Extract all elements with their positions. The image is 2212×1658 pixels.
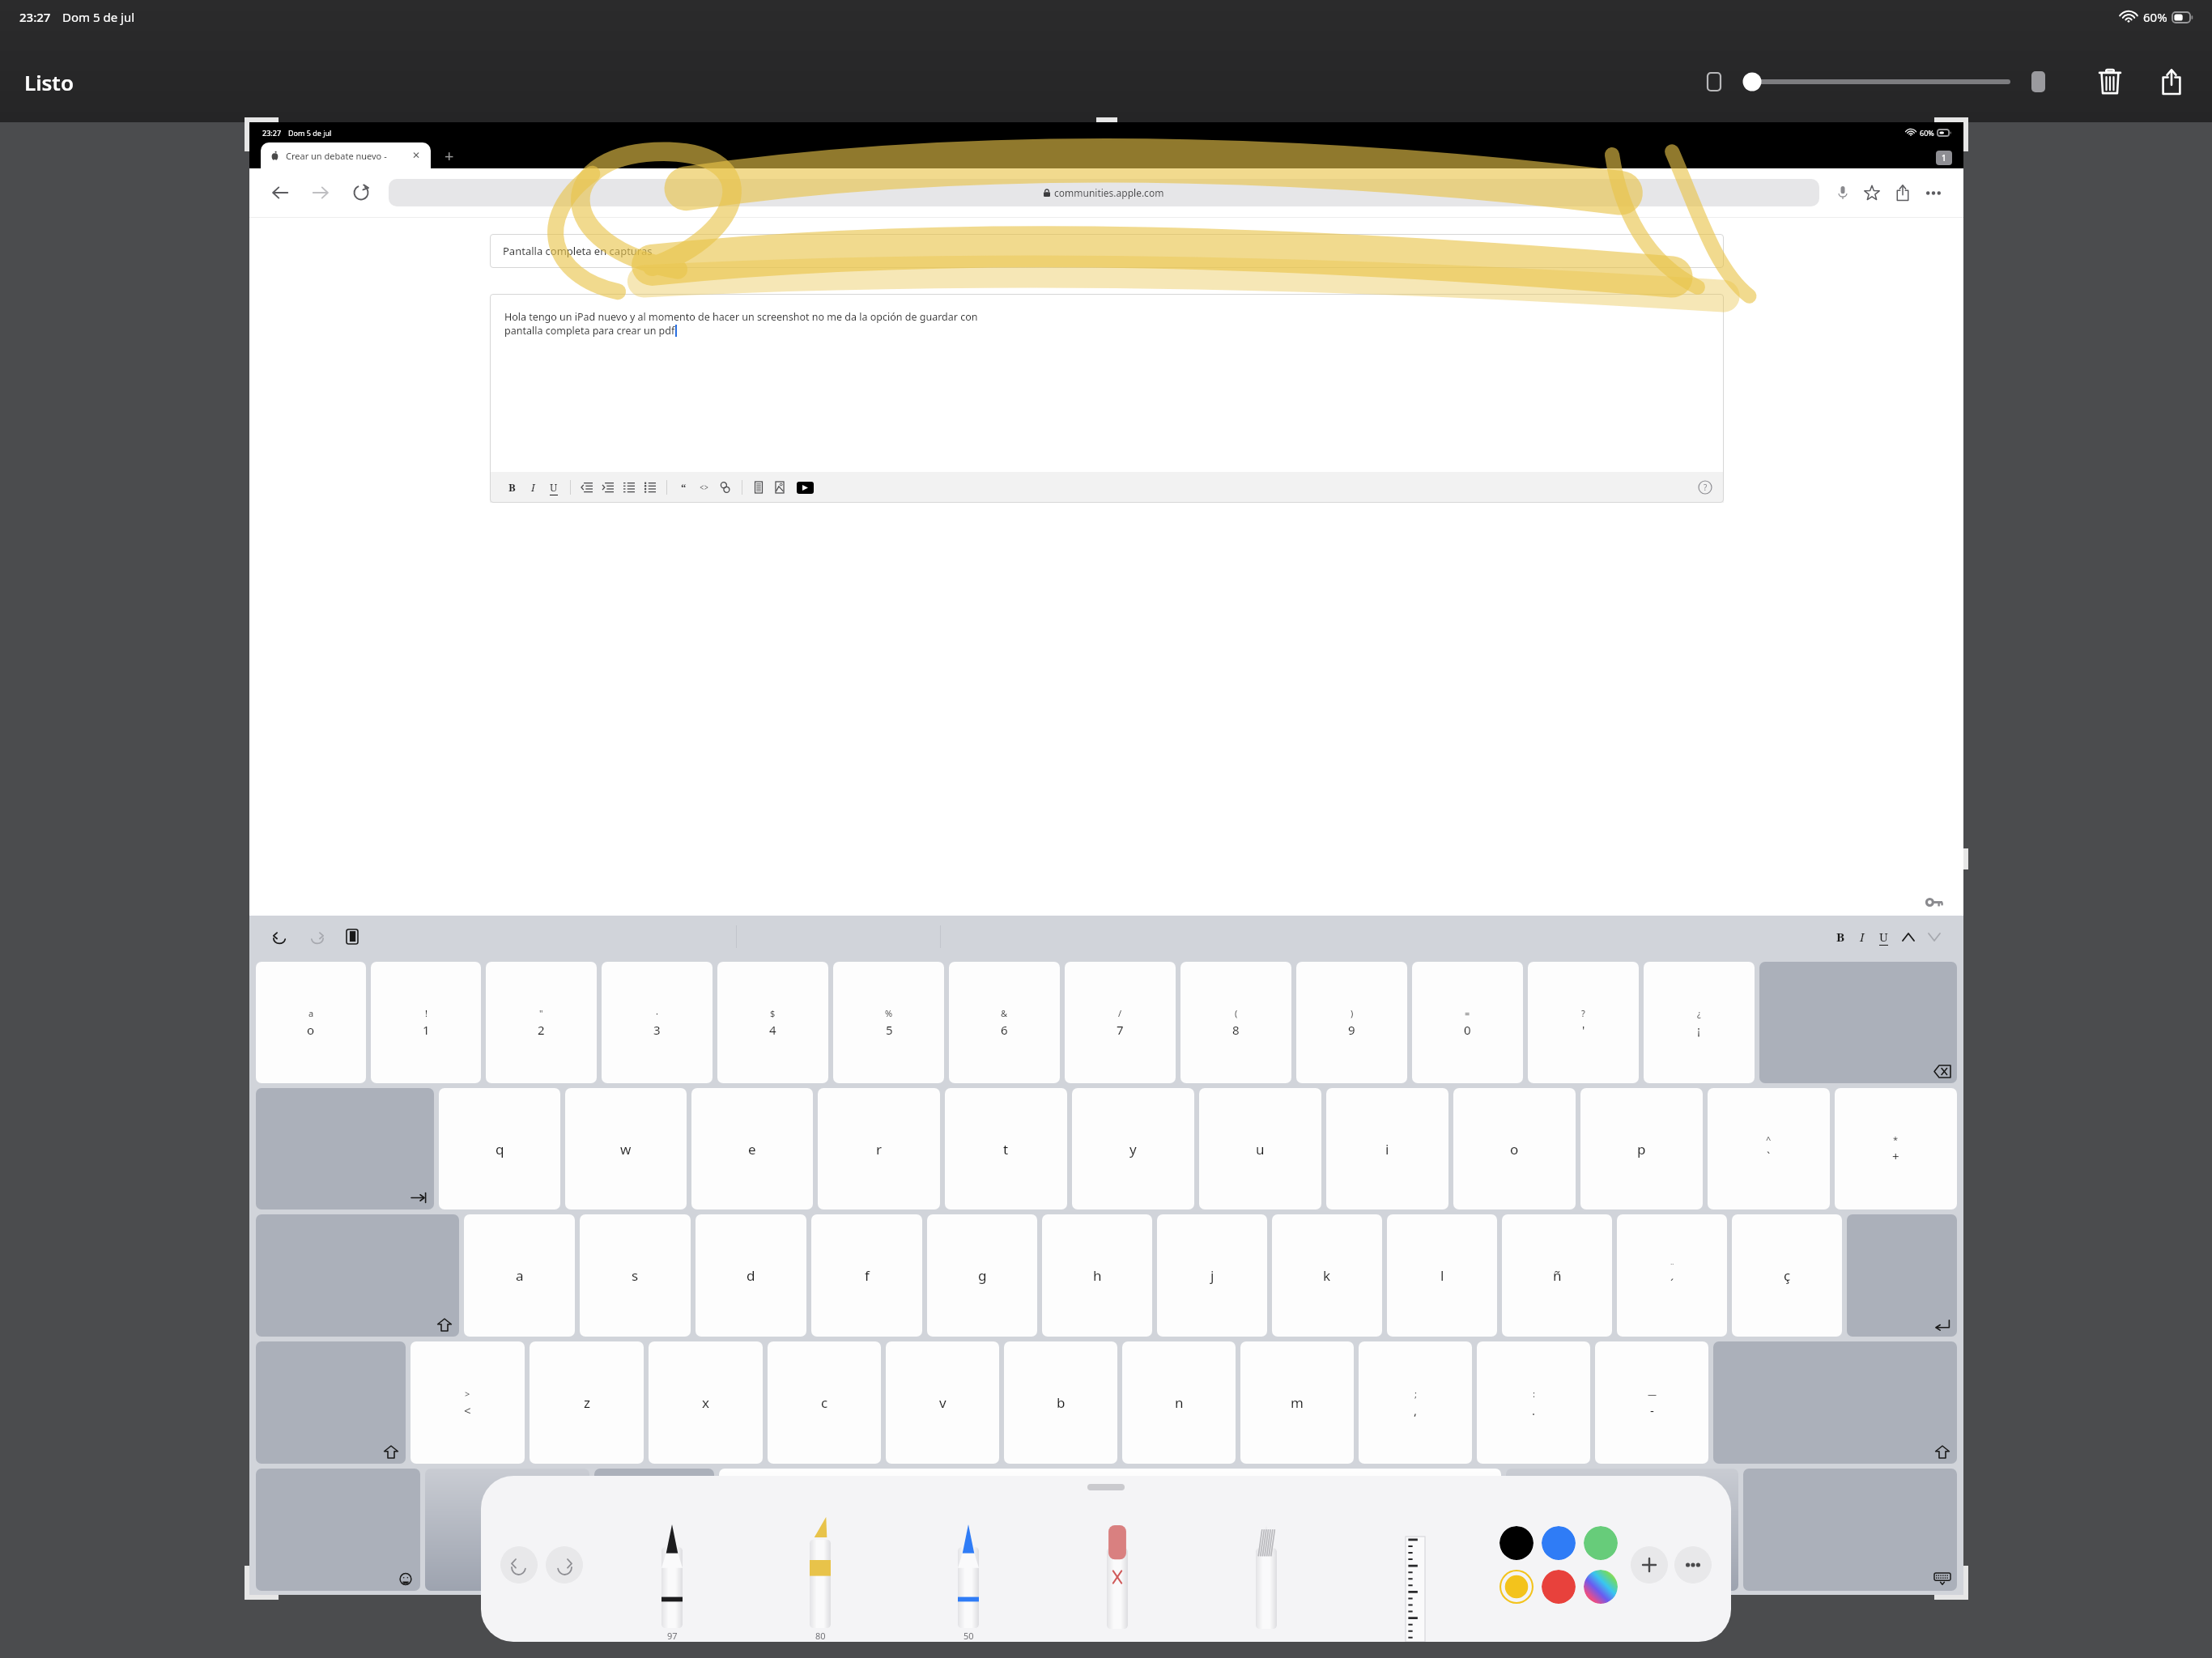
button[interactable]: Formato [598, 476, 619, 499]
button[interactable]: Herramienta [1043, 1487, 1192, 1642]
button[interactable]: Color [1542, 1526, 1576, 1560]
button[interactable]: w [565, 1088, 687, 1209]
button[interactable]: Regla [1341, 1487, 1490, 1642]
button[interactable]: B [1829, 929, 1853, 945]
button[interactable]: Retroceso [1759, 962, 1957, 1083]
button[interactable]: communities.apple.com [389, 179, 1819, 206]
button[interactable]: r [818, 1088, 940, 1209]
button[interactable]: ñ [1502, 1214, 1612, 1337]
button[interactable]: Tabulador [256, 1088, 434, 1209]
button[interactable]: j [1157, 1214, 1267, 1337]
button[interactable]: Deshacer [500, 1546, 538, 1584]
button[interactable]: q [439, 1088, 560, 1209]
button[interactable]: Crear un debate nuevo - [261, 142, 431, 168]
button[interactable]: b [1004, 1341, 1117, 1464]
button[interactable]: — [1595, 1341, 1708, 1464]
button[interactable]: v [886, 1341, 999, 1464]
button[interactable]: a [464, 1214, 575, 1337]
button[interactable]: / [1065, 962, 1176, 1083]
button[interactable]: ^ [1708, 1088, 1830, 1209]
button[interactable]: Formato [715, 476, 736, 499]
button[interactable]: Mayusculas [256, 1214, 459, 1337]
button[interactable]: Siguiente [1921, 924, 1947, 950]
button[interactable]: · [602, 962, 713, 1083]
button[interactable]: z [530, 1341, 644, 1464]
button[interactable]: Recargar [345, 176, 377, 209]
button[interactable]: Ocultar teclado [1743, 1469, 1957, 1591]
button[interactable]: y [1072, 1088, 1194, 1209]
button[interactable]: Ayuda [1698, 480, 1712, 495]
button[interactable]: Favoritos [1857, 177, 1887, 208]
button[interactable]: ç [1732, 1214, 1842, 1337]
button[interactable]: 1 [1936, 151, 1952, 165]
button[interactable]: l [1387, 1214, 1497, 1337]
button[interactable]: x [649, 1341, 763, 1464]
button[interactable]: B [501, 476, 522, 499]
button[interactable]: Espacio [719, 1469, 1501, 1591]
button[interactable]: ; [1359, 1341, 1472, 1464]
button[interactable]: <> [694, 476, 715, 499]
button[interactable]: Pantalla completa en capturas [490, 234, 1724, 268]
button[interactable]: Eliminar [2087, 59, 2133, 104]
button[interactable]: U [1872, 929, 1895, 946]
button[interactable]: Selector de color [1584, 1570, 1618, 1604]
button[interactable]: Herramienta [598, 1487, 746, 1642]
button[interactable]: Deshacer [266, 923, 293, 950]
button[interactable]: Atras [264, 176, 296, 209]
button[interactable]: : [1477, 1341, 1590, 1464]
button[interactable]: Hola tengo un iPad nuevo y al momento de… [490, 294, 1724, 472]
button[interactable]: $ [717, 962, 828, 1083]
button[interactable]: ) [1296, 962, 1407, 1083]
button[interactable]: f [811, 1214, 922, 1337]
button[interactable]: I [522, 476, 543, 499]
button[interactable]: d [696, 1214, 806, 1337]
button[interactable]: Color [1499, 1570, 1534, 1604]
button[interactable]: e [691, 1088, 813, 1209]
button[interactable]: Video [797, 482, 814, 494]
button[interactable]: & [949, 962, 1060, 1083]
button[interactable]: Adelante [304, 176, 337, 209]
button[interactable]: n [1122, 1341, 1236, 1464]
button[interactable]: c [768, 1341, 881, 1464]
button[interactable]: Compartir [2149, 59, 2194, 104]
button[interactable]: u [1199, 1088, 1321, 1209]
button[interactable]: t [945, 1088, 1067, 1209]
button[interactable]: k [1272, 1214, 1382, 1337]
button[interactable]: Mas opciones [1674, 1546, 1712, 1584]
button[interactable]: Rehacer [546, 1546, 583, 1584]
button[interactable]: Formato [769, 476, 790, 499]
button[interactable]: ¨ [1617, 1214, 1727, 1337]
button[interactable]: Listo [18, 63, 80, 101]
button[interactable]: p [1580, 1088, 1703, 1209]
button[interactable]: Rehacer [303, 923, 330, 950]
button[interactable]: Formato [576, 476, 598, 499]
button[interactable]: Color [1542, 1570, 1576, 1604]
button[interactable]: s [580, 1214, 691, 1337]
button[interactable]: Color [1584, 1526, 1618, 1560]
button[interactable]: I [1853, 929, 1872, 945]
button[interactable]: > [410, 1341, 525, 1464]
button[interactable]: Formato [619, 476, 640, 499]
button[interactable]: h [1042, 1214, 1152, 1337]
button[interactable]: Formato [640, 476, 661, 499]
button[interactable]: Herramienta [894, 1487, 1043, 1642]
button[interactable]: Anadir [1631, 1546, 1668, 1584]
button[interactable]: ? [1528, 962, 1639, 1083]
button[interactable]: Nueva pestana [431, 142, 468, 168]
button[interactable]: Anterior [1895, 924, 1921, 950]
button[interactable]: ¿ [1644, 962, 1755, 1083]
button[interactable]: Pegar [338, 923, 366, 950]
button[interactable]: Emoji [256, 1469, 420, 1591]
button[interactable]: i [1326, 1088, 1448, 1209]
button[interactable]: Dictado [594, 1469, 714, 1591]
button[interactable]: .?123 [425, 1469, 589, 1591]
button[interactable]: a [256, 962, 366, 1083]
button[interactable]: " [486, 962, 597, 1083]
button[interactable]: Mas [1918, 177, 1949, 208]
button[interactable]: Herramienta [746, 1487, 894, 1642]
button[interactable]: m [1240, 1341, 1354, 1464]
button[interactable]: ( [1180, 962, 1291, 1083]
button[interactable]: ! [371, 962, 481, 1083]
button[interactable]: Color [1499, 1526, 1534, 1560]
button[interactable]: U [543, 476, 564, 499]
